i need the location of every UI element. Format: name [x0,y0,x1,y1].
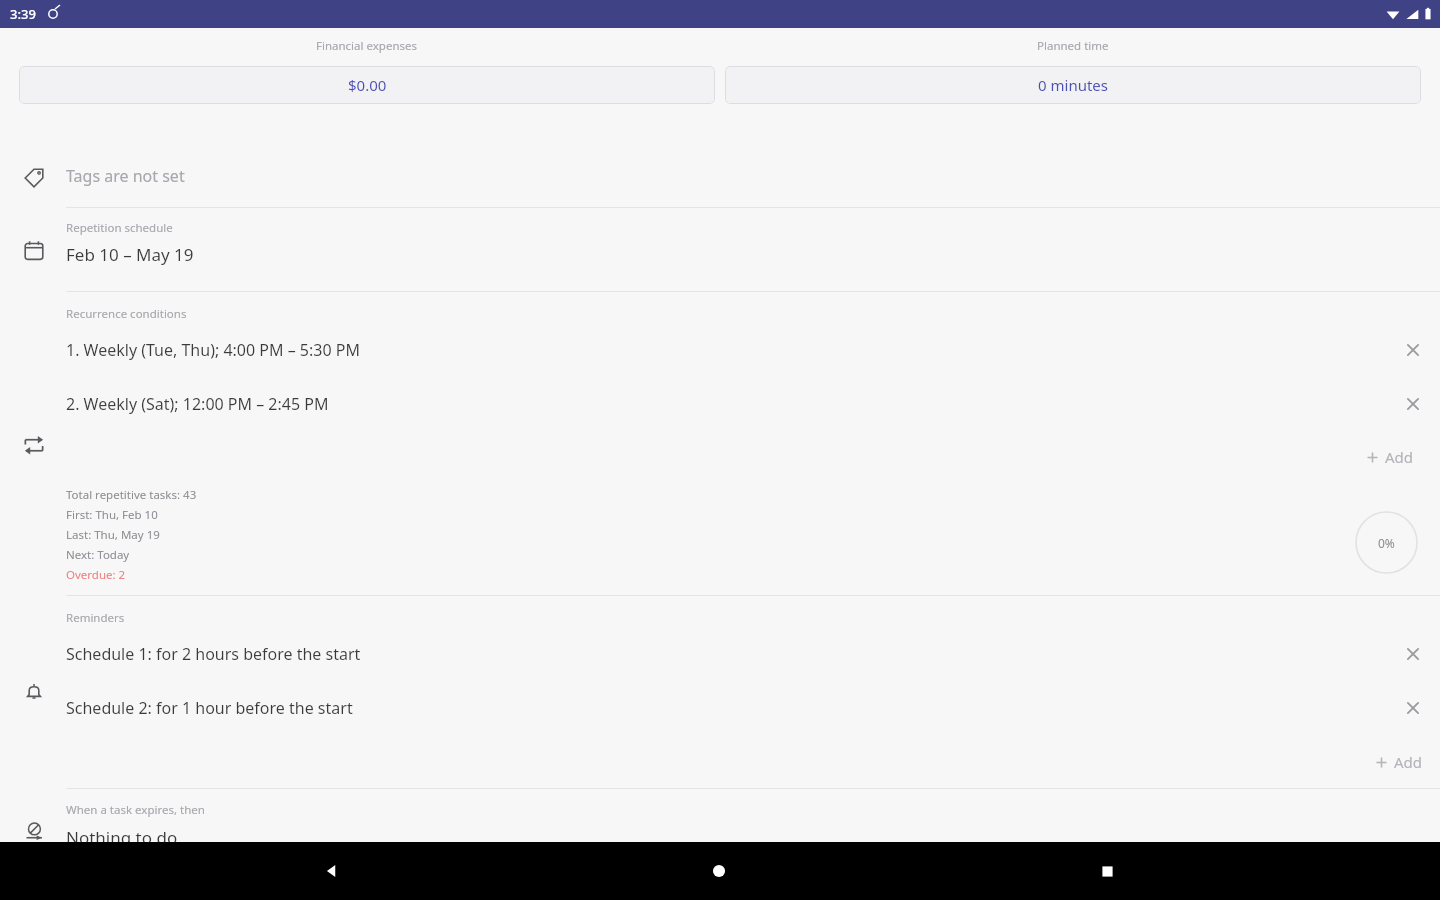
staticText: Overdue: 2 [66,567,126,583]
button[interactable]: 0 minutes [725,66,1421,104]
staticText: Add [1394,752,1423,772]
staticText: Planned time [1037,38,1109,54]
staticText: Tags are not set [66,165,185,187]
button[interactable]: 1. Weekly (Tue, Thu); 4:00 PM – 5:30 PM [0,328,1440,372]
staticText: 0% [1378,535,1395,551]
staticText: Feb 10 – May 19 [66,243,194,266]
button[interactable]: Recent apps [1052,842,1162,900]
staticText: Schedule 2: for 1 hour before the start [66,697,353,719]
button[interactable]: Tags are not set [0,151,1440,207]
button[interactable]: Schedule 1: for 2 hours before the start [0,632,1440,676]
staticText: Financial expenses [316,38,418,54]
staticText: Schedule 1: for 2 hours before the start [66,643,361,665]
staticText: 2. Weekly (Sat); 12:00 PM – 2:45 PM [66,393,329,415]
button[interactable]: Schedule 2: for 1 hour before the start [0,686,1440,730]
button[interactable]: Remove reminder [1396,637,1430,671]
button[interactable]: Add [1366,441,1414,473]
button[interactable]: Add [1375,746,1423,778]
button[interactable]: 0% [1355,511,1418,574]
staticText: Total repetitive tasks: 43 [66,487,197,503]
staticText: Recurrence conditions [66,306,187,322]
staticText: 3:39 [10,5,36,23]
button[interactable]: Back [277,842,387,900]
staticText: Add [1385,447,1414,467]
button[interactable]: $0.00 [19,66,715,104]
button[interactable]: Remove condition [1396,333,1430,367]
staticText: Last: Thu, May 19 [66,527,160,543]
staticText: Next: Today [66,547,130,563]
staticText: Reminders [66,610,125,626]
staticText: Nothing to do [66,826,178,849]
staticText: 1. Weekly (Tue, Thu); 4:00 PM – 5:30 PM [66,339,360,361]
button[interactable]: Home [664,842,774,900]
staticText: Repetition schedule [66,220,173,236]
button[interactable]: Remove condition [1396,387,1430,421]
button[interactable]: 2. Weekly (Sat); 12:00 PM – 2:45 PM [0,382,1440,426]
staticText: When a task expires, then [66,802,205,818]
button[interactable]: Repetition schedule [0,208,1440,291]
button[interactable]: When a task expires, then [0,789,1440,872]
staticText: First: Thu, Feb 10 [66,507,158,523]
button[interactable]: Remove reminder [1396,691,1430,725]
staticText: 0 minutes [1038,75,1108,95]
staticText: $0.00 [348,75,387,95]
